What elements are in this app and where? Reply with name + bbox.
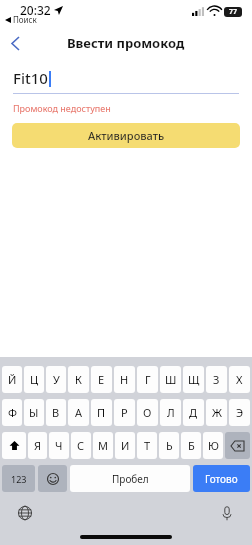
button[interactable]: Ы [24, 399, 44, 426]
button[interactable]: Ц [24, 366, 44, 393]
button[interactable]: М [93, 432, 113, 459]
button[interactable]: Dictation [216, 502, 238, 524]
staticText: Поиск [13, 14, 37, 25]
staticText: Б [188, 438, 195, 453]
staticText: Активировать [88, 128, 165, 143]
staticText: Ш [165, 372, 177, 387]
button[interactable]: Ш [160, 366, 181, 393]
button[interactable]: Е [91, 366, 112, 393]
staticText: 20:32 [20, 2, 51, 18]
staticText: О [143, 405, 152, 420]
staticText: 77 [229, 7, 238, 17]
button[interactable]: Т [137, 432, 157, 459]
button[interactable]: У [46, 366, 66, 393]
button[interactable]: Р [114, 399, 135, 426]
button[interactable]: Г [137, 366, 158, 393]
staticText: Fit10 [13, 68, 48, 88]
staticText: П [97, 405, 106, 420]
button[interactable]: Fit10 [13, 68, 239, 94]
button[interactable]: Х [229, 366, 250, 393]
button[interactable]: С [71, 432, 91, 459]
button[interactable]: Я [28, 432, 47, 459]
button[interactable]: З [206, 366, 227, 393]
button[interactable]: Ь [159, 432, 179, 459]
staticText: Пробел [112, 472, 149, 486]
staticText: Ф [8, 405, 17, 420]
button[interactable]: Э [229, 399, 250, 426]
staticText: Ь [166, 438, 173, 453]
staticText: Р [121, 405, 128, 420]
staticText: А [75, 405, 83, 420]
staticText: Г [145, 372, 151, 387]
button[interactable]: И [115, 432, 135, 459]
button[interactable]: Пробел [70, 465, 190, 492]
staticText: К [75, 372, 82, 387]
staticText: Т [144, 438, 151, 453]
button[interactable]: Б [181, 432, 201, 459]
button[interactable]: Готово [193, 465, 250, 492]
button[interactable]: Ж [206, 399, 227, 426]
button[interactable]: О [137, 399, 158, 426]
staticText: У [53, 372, 60, 387]
staticText: Ввести промокод [67, 34, 185, 52]
button[interactable]: Change keyboard language [14, 502, 36, 524]
staticText: Щ [188, 372, 200, 387]
button[interactable]: К [68, 366, 89, 393]
staticText: И [121, 438, 130, 453]
staticText: Х [236, 372, 243, 387]
button[interactable]: Л [160, 399, 181, 426]
button[interactable]: А [68, 399, 89, 426]
staticText: Н [120, 372, 129, 387]
staticText: Готово [205, 472, 238, 486]
button[interactable]: П [91, 399, 112, 426]
button[interactable]: Ф [2, 399, 22, 426]
button[interactable]: Д [183, 399, 204, 426]
button[interactable]: Ю [203, 432, 223, 459]
button[interactable]: В [46, 399, 66, 426]
button[interactable]: Щ [183, 366, 204, 393]
staticText: З [213, 372, 220, 387]
button[interactable]: 123 [2, 465, 35, 492]
staticText: В [52, 405, 60, 420]
staticText: Е [98, 372, 105, 387]
button[interactable]: Й [2, 366, 22, 393]
button[interactable]: Emoji [38, 465, 67, 492]
button[interactable]: Back [0, 28, 30, 58]
staticText: Э [236, 405, 244, 420]
button[interactable]: Shift [2, 432, 26, 459]
staticText: Ч [55, 438, 63, 453]
staticText: Ж [212, 405, 222, 420]
staticText: Промокод недоступен [13, 102, 111, 114]
staticText: С [77, 438, 85, 453]
button[interactable]: Backspace [225, 432, 250, 459]
button[interactable]: Ч [49, 432, 69, 459]
staticText: Ы [29, 405, 39, 420]
staticText: Д [189, 405, 198, 420]
staticText: Ц [30, 372, 39, 387]
button[interactable]: Активировать [12, 123, 240, 148]
staticText: Й [8, 372, 17, 387]
staticText: Л [167, 405, 175, 420]
staticText: Я [34, 438, 42, 453]
button[interactable]: Н [114, 366, 135, 393]
staticText: М [98, 438, 108, 453]
staticText: Ю [208, 438, 219, 453]
staticText: 123 [11, 473, 27, 485]
